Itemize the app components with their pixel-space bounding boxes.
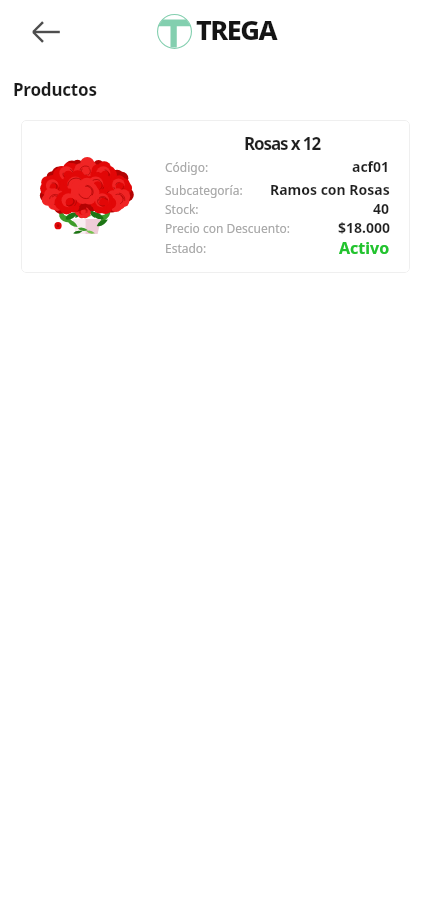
staticText: $18.000 [338, 218, 390, 237]
staticText: TREGA [196, 11, 277, 48]
staticText: 40 [373, 199, 390, 218]
staticText: Stock: [165, 201, 199, 217]
staticText: Estado: [165, 240, 207, 256]
staticText: Ramos con Rosas [270, 180, 390, 199]
staticText: Productos [13, 78, 97, 101]
staticText: Código: [165, 159, 209, 175]
staticText: Subcategoría: [165, 182, 243, 198]
staticText: Precio con Descuento: [165, 220, 290, 236]
button[interactable]: Back [30, 16, 62, 48]
staticText: Rosas x 12 [182, 132, 382, 155]
button[interactable]: Rosas x 12 [21, 120, 410, 273]
staticText: acf01 [352, 157, 390, 176]
staticText: Activo [339, 237, 390, 259]
